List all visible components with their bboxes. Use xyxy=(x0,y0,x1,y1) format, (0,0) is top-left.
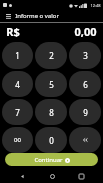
staticText: 7 xyxy=(15,107,20,118)
button[interactable]: Back xyxy=(15,169,29,183)
staticText: Informe o valor xyxy=(15,12,59,20)
staticText: 6 xyxy=(83,79,88,90)
button[interactable]: 9 xyxy=(69,99,101,125)
button[interactable]: 6 xyxy=(69,71,101,97)
button[interactable]: 7 xyxy=(2,99,33,125)
staticText: 0,00 xyxy=(74,24,97,39)
staticText: 9 xyxy=(83,107,88,118)
button[interactable]: 3 xyxy=(69,42,101,69)
staticText: 00 xyxy=(14,136,21,144)
button[interactable]: 0 xyxy=(35,127,67,153)
button[interactable]: Continuar xyxy=(5,153,98,166)
staticText: 5 xyxy=(49,79,54,90)
button[interactable]: Menu xyxy=(4,12,12,20)
staticText: Continuar xyxy=(34,156,63,164)
button[interactable]: Home xyxy=(45,169,59,183)
button[interactable]: Backspace xyxy=(69,127,101,153)
button[interactable]: 5 xyxy=(35,71,67,97)
staticText: 0 xyxy=(49,135,54,146)
button[interactable]: 4 xyxy=(2,71,33,97)
staticText: 1 xyxy=(15,50,20,61)
button[interactable]: 00 xyxy=(2,127,33,153)
staticText: 2 xyxy=(49,50,54,61)
staticText: R$ xyxy=(6,24,20,39)
staticText: 4 xyxy=(15,79,20,90)
staticText: 12:48 xyxy=(90,3,101,8)
button[interactable]: 2 xyxy=(35,42,67,69)
staticText: 3 xyxy=(83,50,88,61)
staticText: 8 xyxy=(49,107,54,118)
button[interactable]: 1 xyxy=(2,42,33,69)
button[interactable]: Recent apps xyxy=(74,169,88,183)
button[interactable]: 8 xyxy=(35,99,67,125)
